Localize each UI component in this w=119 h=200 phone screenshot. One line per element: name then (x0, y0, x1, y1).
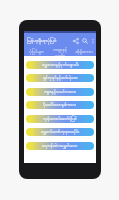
staticText: မြန်မာ့ရိုးရာပုံပြင် (27, 37, 71, 44)
staticText: ကုန်းဘောင်ခေတ်ပုံပြင် (43, 116, 77, 122)
button[interactable]: ကျားနှင့်သမင်ကလေး (26, 88, 94, 96)
staticText: ရွှေဖလားနှင့်ငှက်ပျောသီး (42, 62, 79, 68)
button[interactable]: More options (89, 37, 96, 44)
staticText: ရှင်ဘုရင်နှင့်ဆင်းရဲသား (43, 75, 78, 81)
staticText: ကဗျာနှင့်လင်္ကာ (48, 47, 72, 56)
button[interactable]: ရွှေစက်တော်ဘုရားသမိုင်း (26, 128, 94, 136)
button[interactable]: ပုံပြင်များ (24, 47, 48, 56)
staticText: ကျားနှင့်သမင်ကလေး (44, 89, 77, 95)
staticText: ရွှေစက်တော်ဘုရားသမိုင်း (41, 129, 80, 135)
staticText: ရေကန်ထဲကရွှေငါးလေး (42, 143, 78, 149)
staticText: ဆိုရိုးစကား (75, 49, 93, 55)
button[interactable]: ဆိုရိုးစကား (72, 47, 96, 56)
staticText: ပုံပြင်များ (29, 49, 44, 55)
button[interactable]: ကုန်းဘောင်ခေတ်ပုံပြင် (26, 115, 94, 123)
button[interactable]: ရေကန်ထဲကရွှေငါးလေး (26, 142, 94, 150)
staticText: မိုးခေါင်သောနှစ်ကာလ (43, 102, 77, 108)
button[interactable]: ရှင်ဘုရင်နှင့်ဆင်းရဲသား (26, 74, 94, 82)
button[interactable]: Search (80, 36, 89, 45)
button[interactable]: ကဗျာနှင့်လင်္ကာ (48, 47, 72, 56)
button[interactable]: ရွှေဖလားနှင့်ငှက်ပျောသီး (26, 61, 94, 69)
button[interactable]: မိုးခေါင်သောနှစ်ကာလ (26, 101, 94, 109)
button[interactable]: Share (71, 36, 80, 45)
